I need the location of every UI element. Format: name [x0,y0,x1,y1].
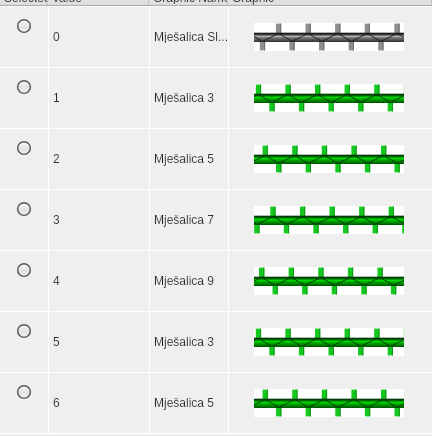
button[interactable]: Select row 3 [0,190,48,251]
staticText: 2 [53,152,60,165]
button[interactable]: Select row 4 [0,251,48,312]
button[interactable]: Select row 1 [0,68,48,129]
staticText: 6 [53,396,60,409]
staticText: 3 [53,213,60,226]
staticText: Mješalica 9 [154,274,215,287]
staticText: Value [52,0,82,4]
button[interactable]: Select row 5 [0,312,48,373]
button[interactable]: Value [48,0,149,7]
staticText: Selected [4,0,48,4]
button[interactable]: Select row 2 [0,129,48,190]
staticText: 0 [53,30,60,43]
button[interactable]: Select row 6 [0,373,48,434]
staticText: Graphic Name [153,0,228,4]
staticText: Graphic [232,0,275,4]
staticText: Mješalica 3 [154,335,215,348]
button[interactable]: Selected [0,0,48,7]
staticText: Mješalica 5 [154,152,215,165]
staticText: Mješalica Sl... [154,30,228,43]
staticText: Mješalica 5 [154,396,215,409]
staticText: Mješalica 3 [154,91,215,104]
staticText: 5 [53,335,60,348]
button[interactable]: Select row 0 [0,7,48,68]
staticText: 4 [53,274,60,287]
staticText: Mješalica 7 [154,213,215,226]
staticText: 1 [53,91,60,104]
button[interactable]: Graphic [228,0,432,7]
button[interactable]: Graphic Name [149,0,228,7]
